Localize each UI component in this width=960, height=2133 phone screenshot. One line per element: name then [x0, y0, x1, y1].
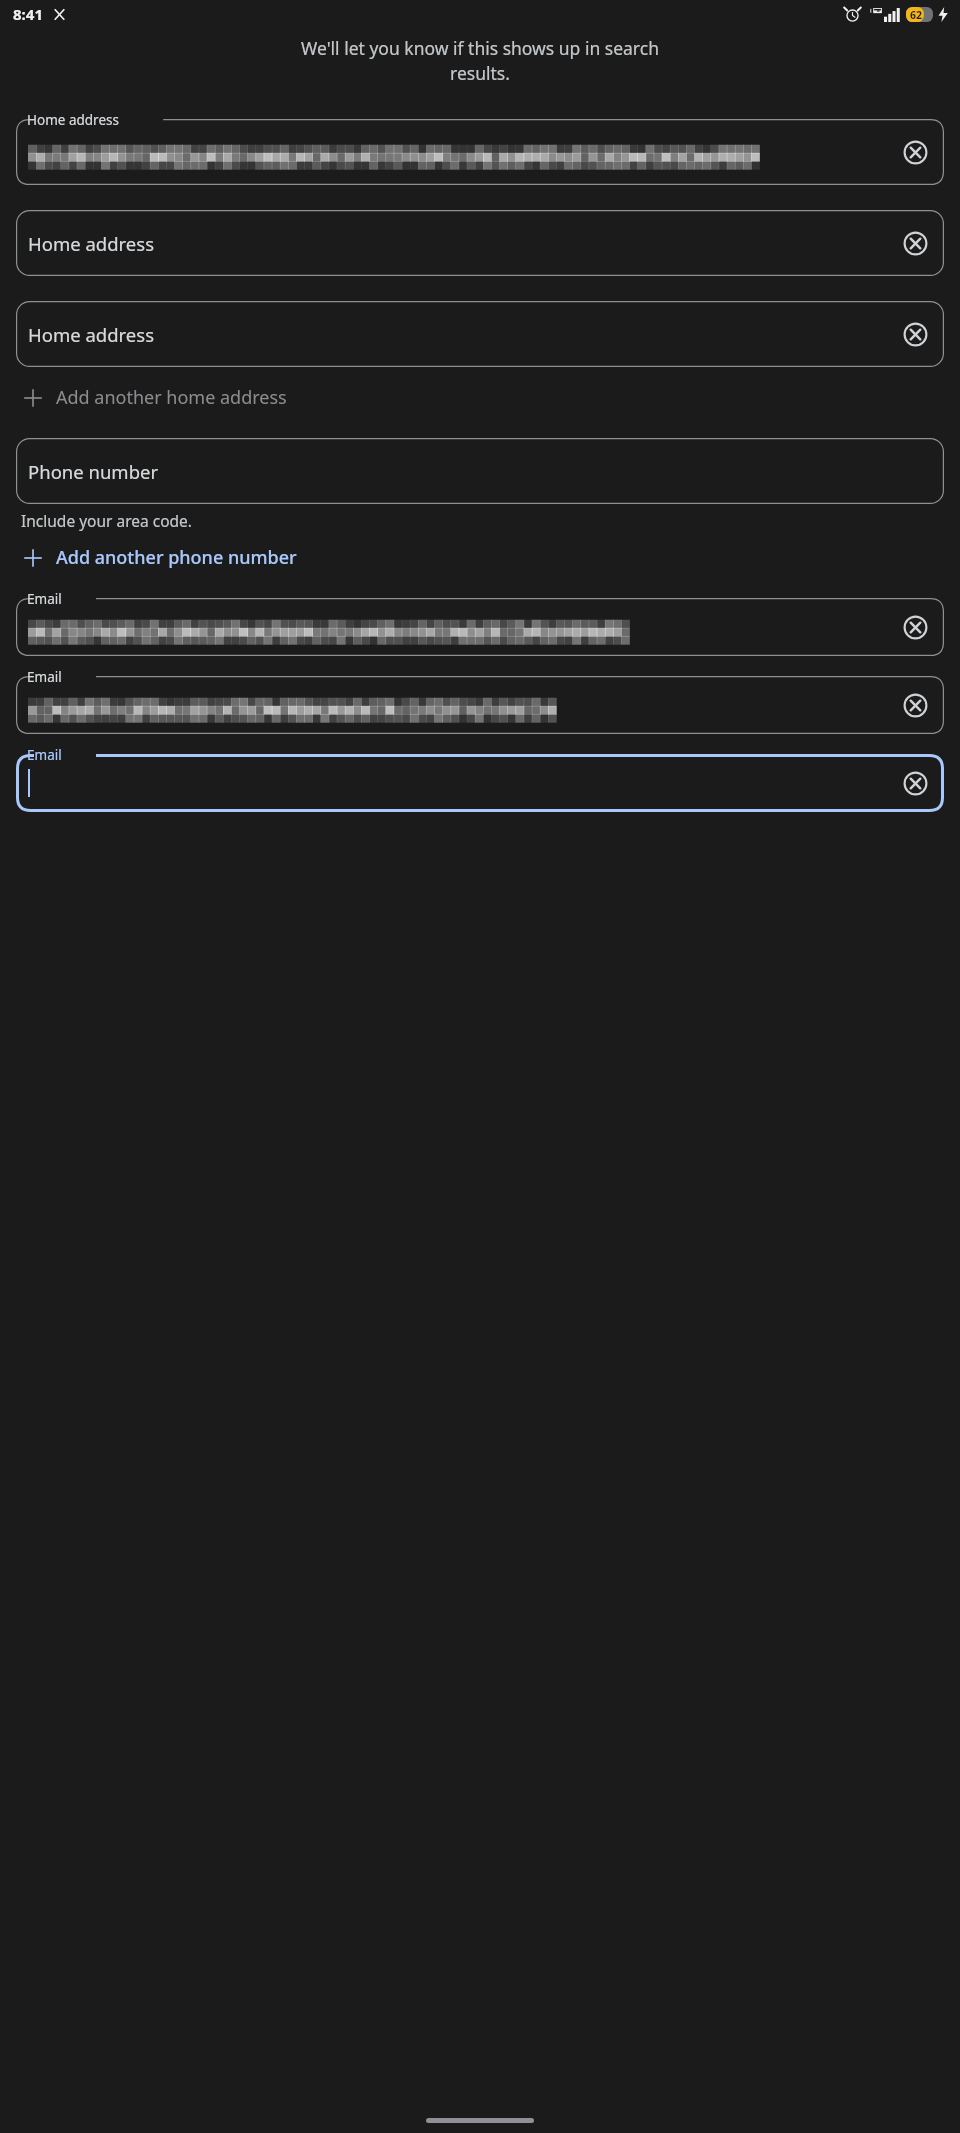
staticText: Home address — [28, 231, 155, 256]
staticText: Email — [27, 746, 62, 764]
button[interactable]: Clear text — [898, 317, 932, 351]
button[interactable]: Phone number — [16, 430, 944, 504]
staticText: Add another phone number — [56, 545, 297, 570]
button[interactable]: Clear text — [16, 590, 944, 656]
staticText: Email — [27, 590, 62, 608]
button[interactable]: Add another phone number — [0, 539, 960, 576]
button[interactable]: Add another home address — [0, 379, 960, 416]
button[interactable]: Clear text — [898, 688, 932, 722]
button[interactable]: Clear text — [898, 135, 932, 169]
staticText: 62 — [910, 8, 923, 22]
staticText: Add another home address — [56, 385, 287, 410]
button[interactable]: Home address — [16, 293, 944, 367]
button[interactable]: Clear text — [898, 610, 932, 644]
staticText: Email — [27, 668, 62, 686]
button[interactable]: Clear text — [16, 111, 944, 185]
button[interactable]: Clear text — [898, 766, 932, 800]
button[interactable]: Clear text — [16, 746, 944, 812]
staticText: Home address — [27, 111, 119, 129]
button[interactable]: Clear text — [16, 668, 944, 734]
staticText: Home address — [28, 322, 155, 347]
staticText: Include your area code. — [21, 510, 192, 531]
staticText: We'll let you know if this shows up in s… — [24, 36, 936, 85]
button[interactable]: Home address — [16, 202, 944, 276]
staticText: Phone number — [28, 459, 159, 484]
staticText: 8:41 — [13, 4, 43, 24]
button[interactable]: Clear text — [898, 226, 932, 260]
